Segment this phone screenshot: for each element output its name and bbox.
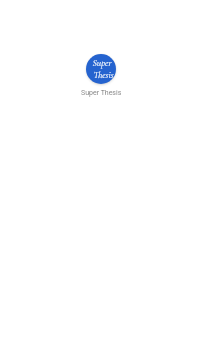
staticText: Super	[92, 57, 112, 69]
button[interactable]: Super Thesis logo	[86, 54, 116, 84]
staticText: Super Thesis	[81, 89, 122, 97]
staticText: Thesis	[93, 69, 114, 81]
